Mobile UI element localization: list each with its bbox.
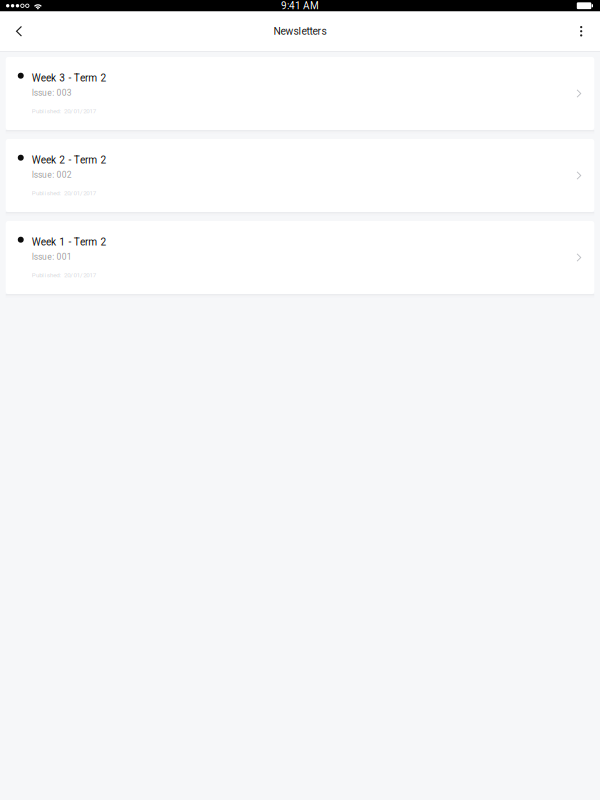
staticText: Published: 20/01/2017 [32,189,96,197]
button[interactable]: Back [0,11,38,52]
staticText: Published: 20/01/2017 [32,271,96,279]
button[interactable]: Week 3 - Term 2 [6,57,594,130]
staticText: Issue: 001 [32,252,72,262]
staticText: Week 1 - Term 2 [32,236,106,248]
staticText: Issue: 002 [32,170,72,180]
staticText: 9:41 AM [281,0,319,12]
staticText: Published: 20/01/2017 [32,107,96,115]
staticText: Week 2 - Term 2 [32,154,106,166]
button[interactable]: Week 2 - Term 2 [6,139,594,212]
button[interactable]: Week 1 - Term 2 [6,221,594,294]
staticText: Week 3 - Term 2 [32,72,106,84]
staticText: Newsletters [273,25,326,37]
staticText: Issue: 003 [32,88,72,98]
button[interactable]: More options [562,11,600,52]
